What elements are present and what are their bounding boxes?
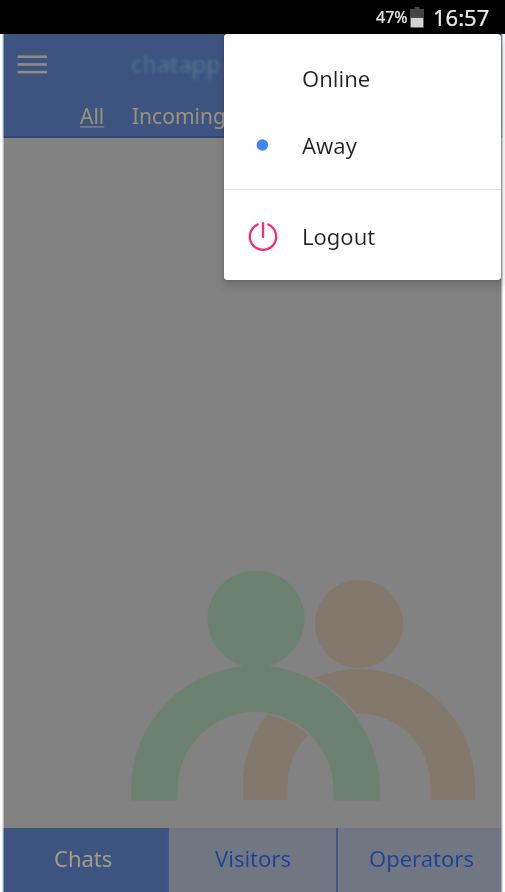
button[interactable]: Operators [338,828,505,892]
staticText: chatapp [128,47,218,78]
staticText: chatapp [128,48,218,79]
staticText: chatapp [131,48,221,79]
staticText: chatapp [133,44,223,75]
staticText: chatapp [129,47,219,78]
staticText: chatapp [127,49,217,80]
staticText: chatapp [131,44,221,75]
staticText: chatapp [135,46,225,77]
staticText: chatapp [127,44,217,75]
staticText: chatapp [132,51,222,82]
staticText: chatapp [132,50,222,81]
staticText: chatapp [127,48,217,79]
staticText: chatapp [132,49,222,80]
staticText: chatapp [126,48,216,79]
button[interactable]: Incoming [124,98,234,135]
staticText: chatapp [135,51,225,82]
staticText: Incoming [132,102,226,131]
staticText: 47% [376,6,408,28]
staticText: chatapp [129,46,219,77]
button[interactable]: Away [224,111,501,178]
staticText: Visitors [215,843,291,873]
staticText: chatapp [126,44,216,75]
staticText: Operators [369,843,474,873]
staticText: chatapp [134,47,224,78]
staticText: Chats [54,843,113,873]
staticText: chatapp [129,52,219,83]
staticText: Away [302,130,357,160]
staticText: chatapp [129,49,219,80]
staticText: chatapp [135,47,225,78]
staticText: chatapp [136,49,226,80]
staticText: chatapp [131,47,221,78]
staticText: chatapp [133,49,223,80]
staticText: chatapp [136,46,226,77]
staticText: chatapp [135,49,225,80]
staticText: chatapp [128,49,218,80]
staticText: chatapp [126,51,216,82]
staticText: chatapp [131,45,221,76]
staticText: chatapp [130,45,220,76]
button[interactable]: Chats [0,828,167,892]
staticText: chatapp [131,52,221,83]
staticText: chatapp [127,45,217,76]
staticText: chatapp [126,50,216,81]
button[interactable]: Online [224,44,501,111]
staticText: chatapp [132,52,222,83]
staticText: chatapp [130,46,220,77]
staticText: chatapp [129,45,219,76]
staticText: chatapp [134,44,224,75]
staticText: chatapp [131,51,221,82]
button[interactable]: Open navigation drawer [10,46,54,86]
button[interactable]: Visitors [169,828,336,892]
staticText: chatapp [128,46,218,77]
button[interactable]: All [72,98,113,135]
staticText: 16:57 [433,2,490,32]
staticText: chatapp [128,51,218,82]
staticText: chatapp [136,51,226,82]
staticText: chatapp [133,50,223,81]
staticText: chatapp [130,49,220,80]
staticText: chatapp [135,45,225,76]
staticText: chatapp [128,50,218,81]
staticText: chatapp [129,50,219,81]
staticText: chatapp [132,44,222,75]
staticText: chatapp [136,45,226,76]
staticText: Online [302,63,371,93]
staticText: chatapp [130,48,220,79]
staticText: chatapp [136,50,226,81]
staticText: chatapp [135,48,225,79]
staticText: chatapp [134,52,224,83]
staticText: chatapp [134,46,224,77]
staticText: chatapp [126,47,216,78]
staticText: chatapp [130,44,220,75]
staticText: chatapp [131,49,221,80]
staticText: chatapp [132,46,222,77]
staticText: chatapp [132,45,222,76]
staticText: chatapp [136,47,226,78]
staticText: chatapp [127,50,217,81]
staticText: chatapp [126,45,216,76]
staticText: chatapp [127,51,217,82]
staticText: chatapp [127,46,217,77]
staticText: chatapp [136,48,226,79]
staticText: chatapp [133,45,223,76]
staticText: chatapp [130,52,220,83]
staticText: chatapp [130,50,220,81]
staticText: chatapp [129,48,219,79]
staticText: chatapp [133,52,223,83]
staticText: chatapp [136,44,226,75]
staticText: chatapp [132,48,222,79]
staticText: chatapp [133,47,223,78]
staticText: chatapp [128,44,218,75]
staticText: chatapp [131,46,221,77]
staticText: chatapp [126,52,216,83]
staticText: chatapp [134,51,224,82]
staticText: chatapp [134,45,224,76]
staticText: Logout [302,221,376,251]
button[interactable]: Logout [224,202,501,269]
staticText: chatapp [129,51,219,82]
staticText: chatapp [135,44,225,75]
staticText: chatapp [133,48,223,79]
staticText: chatapp [135,50,225,81]
staticText: chatapp [130,51,220,82]
